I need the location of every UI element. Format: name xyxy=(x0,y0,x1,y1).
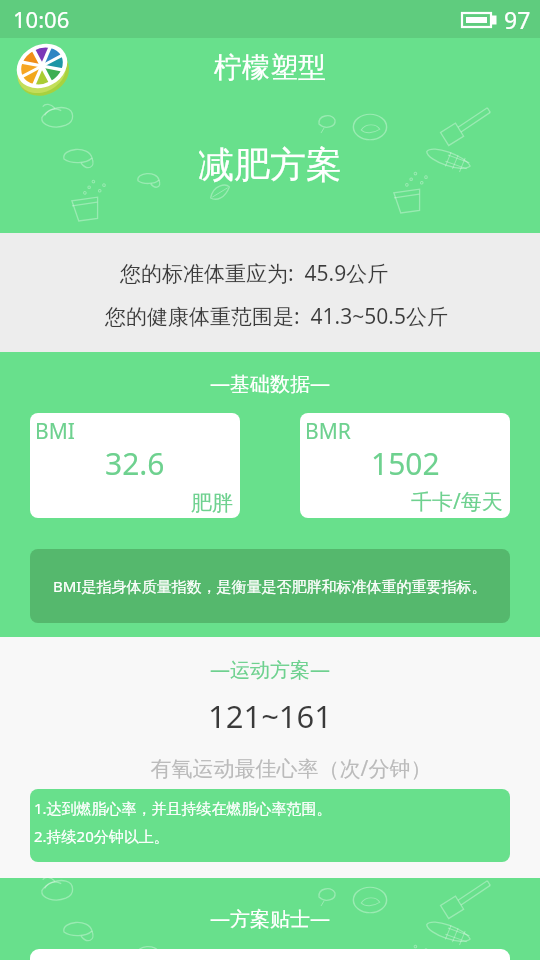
button[interactable]: BMI是指身体质量指数，是衡量是否肥胖和标准体重的重要指标。 xyxy=(30,549,510,623)
button[interactable] xyxy=(30,949,510,960)
staticText: 121~161 xyxy=(0,695,540,737)
button[interactable]: BMI xyxy=(30,413,240,518)
staticText: 千卡/每天 xyxy=(411,487,503,516)
button[interactable]: App logo xyxy=(12,38,72,96)
staticText: 有氧运动最佳心率（次/分钟） xyxy=(21,754,540,783)
staticText: 您的健康体重范围是: 41.3~50.5公斤 xyxy=(105,302,448,331)
staticText: BMI xyxy=(35,417,75,446)
staticText: 2.持续20分钟以上。 xyxy=(34,826,169,846)
staticText: —运动方案— xyxy=(0,656,540,683)
staticText: 肥胖 xyxy=(191,490,233,516)
staticText: BMR xyxy=(305,417,351,446)
other: Battery xyxy=(462,11,496,29)
staticText: 您的标准体重应为: 45.9公斤 xyxy=(120,259,389,288)
staticText: 32.6 xyxy=(105,443,165,484)
staticText: 1.达到燃脂心率，并且持续在燃脂心率范围。 xyxy=(34,798,332,818)
staticText: 柠檬塑型 xyxy=(214,50,326,85)
button[interactable]: 1.达到燃脂心率，并且持续在燃脂心率范围。 xyxy=(30,789,510,862)
staticText: BMI是指身体质量指数，是衡量是否肥胖和标准体重的重要指标。 xyxy=(53,576,487,596)
staticText: 10:06 xyxy=(13,4,70,34)
staticText: 97 xyxy=(504,4,531,35)
staticText: 1502 xyxy=(371,443,440,484)
button[interactable]: BMR xyxy=(300,413,510,518)
staticText: —基础数据— xyxy=(0,370,540,397)
staticText: —方案贴士— xyxy=(0,905,540,932)
staticText: 减肥方案 xyxy=(198,142,342,187)
